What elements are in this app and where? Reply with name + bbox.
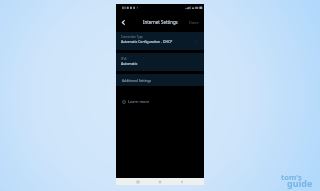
button[interactable]: Back [171,178,193,185]
button[interactable]: Additional Settings [116,74,204,86]
staticText: tom's [281,172,302,182]
button[interactable]: IPv6 [116,53,204,71]
staticText: Connection Type [121,35,143,39]
staticText: Automatic [121,61,138,66]
staticText: guide [287,177,313,189]
button[interactable]: Connection Type [116,32,204,50]
button[interactable]: Recents [127,178,149,185]
button[interactable]: Done [186,17,204,28]
staticText: Internet Settings [143,19,178,25]
staticText: IPv6 [121,57,127,61]
button[interactable]: Back [118,17,129,28]
staticText: Learn more [128,99,150,104]
button[interactable]: Home [149,178,171,185]
staticText: Automatic Configuration - DHCP [121,39,173,44]
staticText: Done [189,20,199,25]
button[interactable]: Learn more [116,96,204,107]
staticText: Additional Settings [122,78,152,82]
